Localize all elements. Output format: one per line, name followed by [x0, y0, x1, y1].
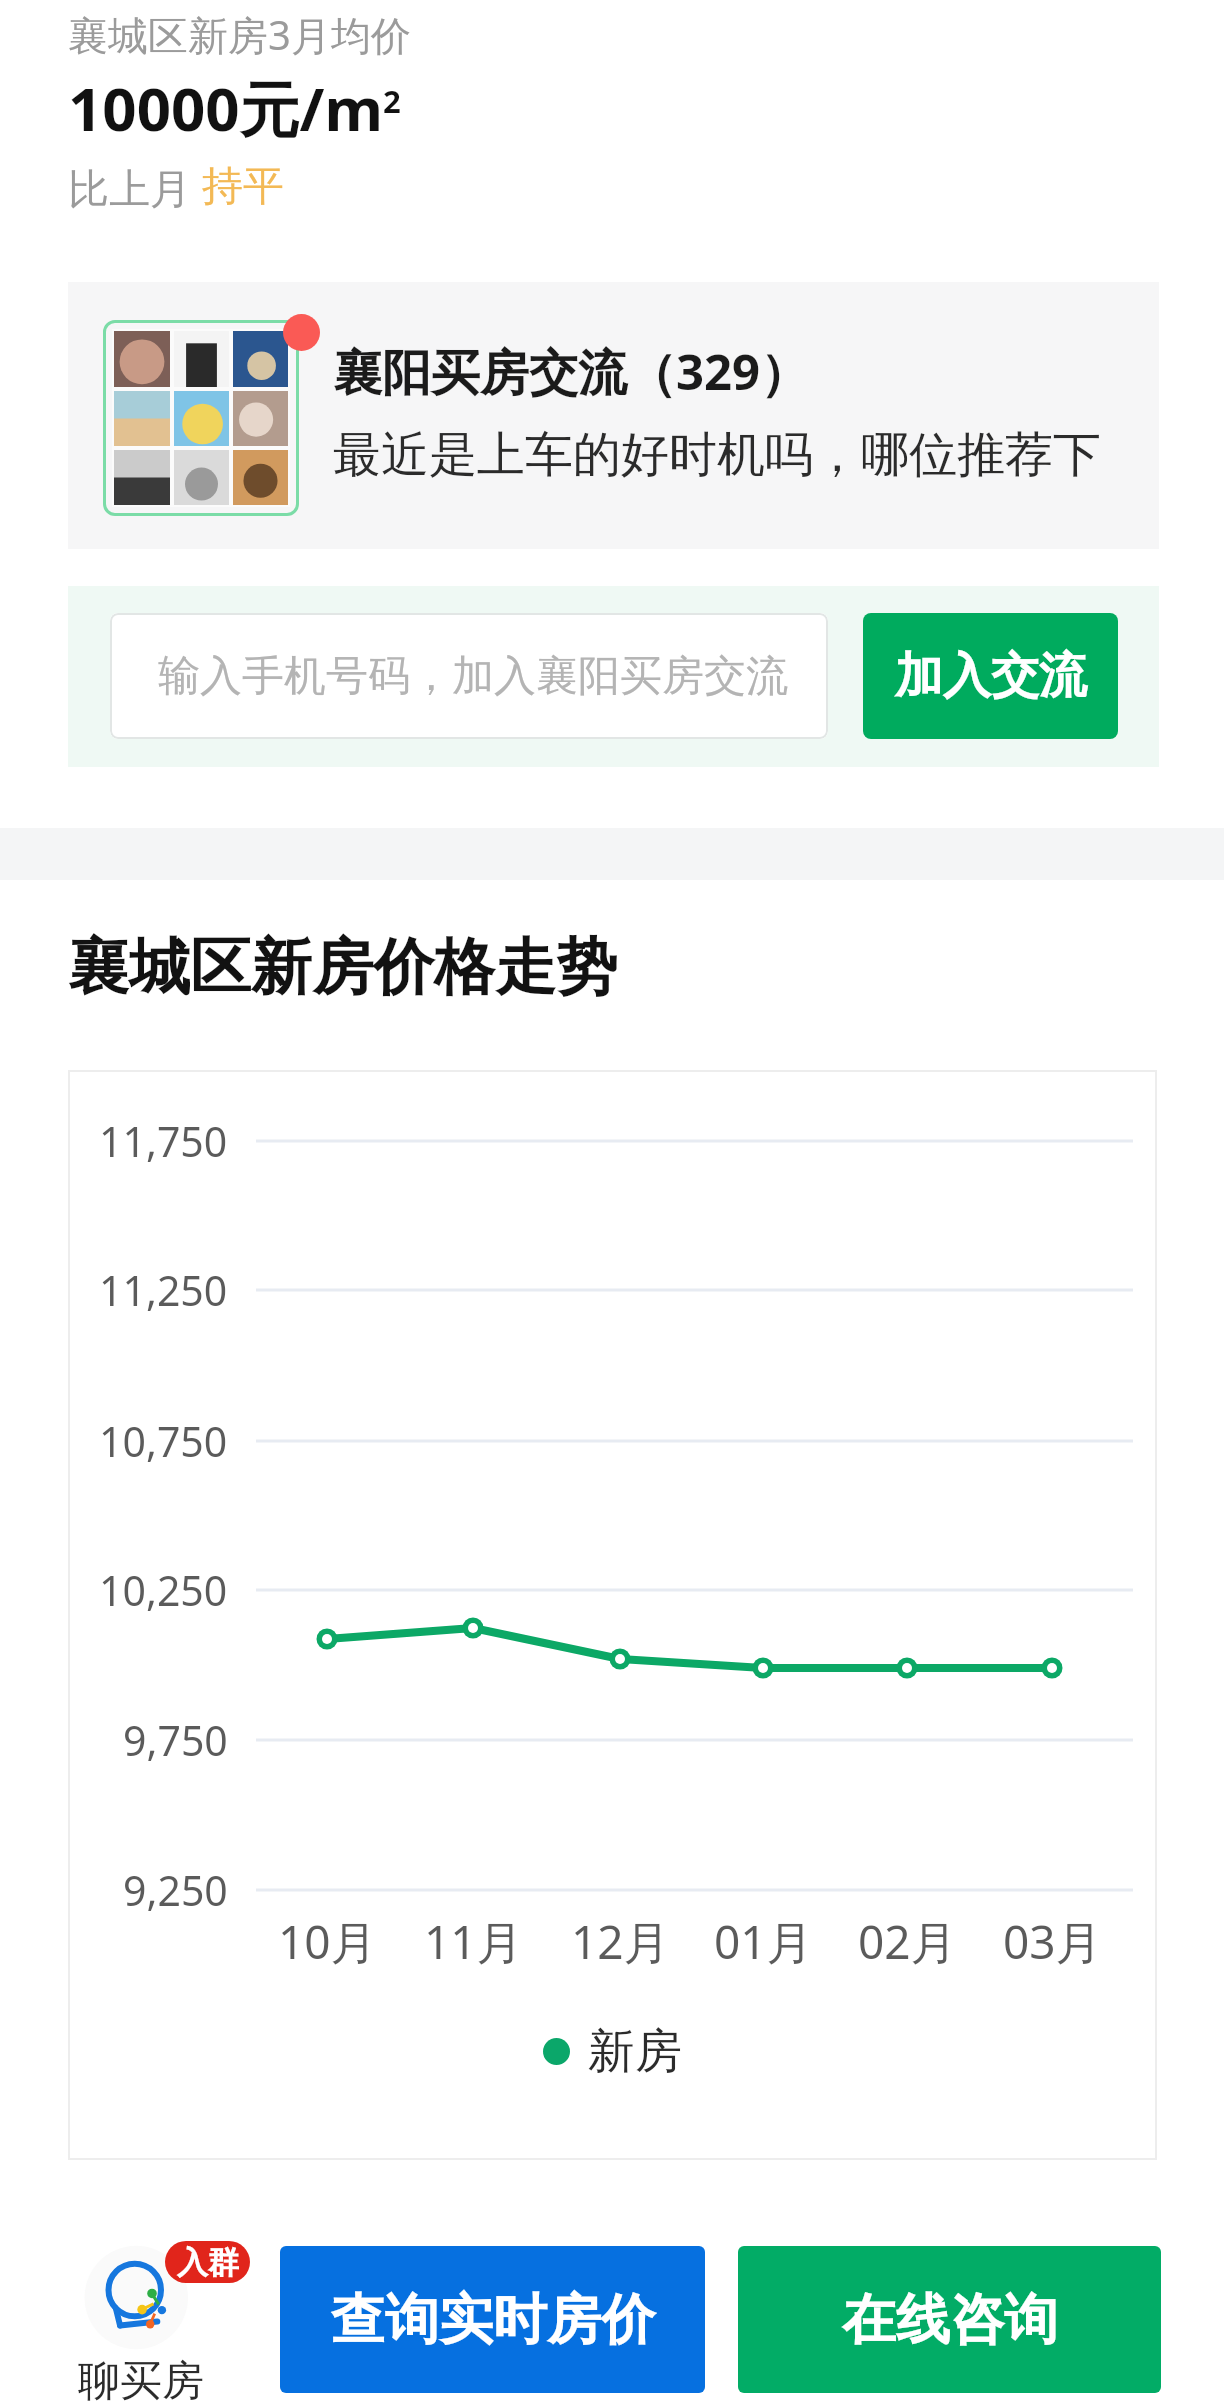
staticText: 襄城区新房价格走势: [68, 929, 617, 1006]
staticText: 10月: [278, 1910, 377, 1973]
staticText: 11月: [424, 1910, 523, 1973]
staticText: 10000元/m2: [68, 67, 401, 149]
staticText: 襄城区新房3月均价: [68, 7, 411, 62]
staticText: 9,250: [123, 1862, 228, 1918]
button[interactable]: 加入交流: [863, 613, 1118, 739]
staticText: 10,250: [99, 1562, 228, 1618]
staticText: 加入交流: [895, 646, 1087, 706]
staticText: 查询实时房价: [331, 2286, 655, 2354]
staticText: 12月: [571, 1910, 670, 1973]
staticText: 最近是上车的好时机吗，哪位推荐下: [333, 425, 1101, 485]
staticText: 持平: [202, 161, 284, 213]
button[interactable]: 襄阳买房交流（329）: [68, 282, 1159, 549]
button[interactable]: 在线咨询: [738, 2246, 1161, 2393]
staticText: 比上月: [68, 159, 202, 215]
staticText: 11,750: [99, 1113, 228, 1169]
staticText: 襄阳买房交流（329）: [333, 338, 810, 405]
staticText: 11,250: [99, 1262, 228, 1318]
button[interactable]: 聊买房 入群: [68, 2240, 218, 2405]
staticText: 输入手机号码，加入襄阳买房交流: [158, 650, 788, 703]
staticText: 新房: [588, 2022, 682, 2081]
button[interactable]: 查询实时房价: [280, 2246, 705, 2393]
other: 聊买房 入群: [68, 2240, 218, 2355]
staticText: 10,750: [99, 1413, 228, 1469]
staticText: 03月: [1003, 1910, 1102, 1973]
staticText: 聊买房: [78, 2355, 204, 2405]
staticText: 01月: [714, 1910, 813, 1973]
staticText: 在线咨询: [842, 2286, 1058, 2354]
button[interactable]: 输入手机号码，加入襄阳买房交流: [110, 613, 828, 739]
staticText: 02月: [858, 1910, 957, 1973]
staticText: 9,750: [123, 1712, 228, 1768]
staticText: 入群: [177, 2243, 239, 2282]
